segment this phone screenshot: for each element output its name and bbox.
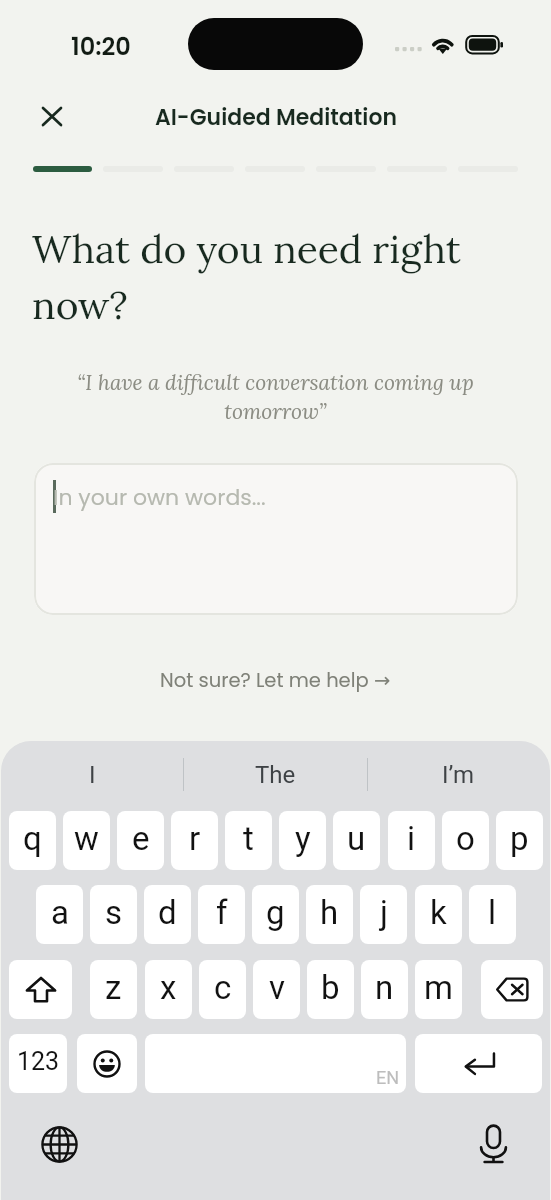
- button[interactable]: j: [360, 885, 407, 944]
- staticText: x: [160, 968, 177, 1007]
- staticText: i: [407, 819, 416, 858]
- staticText: EN: [376, 1067, 400, 1088]
- staticText: I’m: [442, 761, 475, 789]
- button[interactable]: z: [90, 960, 137, 1019]
- staticText: v: [269, 968, 285, 1007]
- button[interactable]: u: [333, 811, 380, 870]
- button[interactable]: 123: [9, 1034, 67, 1093]
- button[interactable]: w: [63, 811, 110, 870]
- staticText: s: [105, 893, 123, 932]
- button[interactable]: I’m: [367, 758, 550, 791]
- button[interactable]: i: [388, 811, 435, 870]
- button[interactable]: h: [306, 885, 353, 944]
- button[interactable]: y: [279, 811, 326, 870]
- staticText: b: [321, 968, 340, 1007]
- button[interactable]: s: [90, 885, 137, 944]
- staticText: f: [216, 893, 228, 932]
- staticText: y: [295, 819, 311, 858]
- button[interactable]: Backspace: [481, 960, 543, 1019]
- button[interactable]: r: [171, 811, 218, 870]
- staticText: The: [255, 761, 296, 789]
- button[interactable]: b: [307, 960, 354, 1019]
- button[interactable]: I: [1, 758, 184, 791]
- staticText: k: [430, 893, 447, 932]
- button[interactable]: f: [198, 885, 245, 944]
- button[interactable]: Return: [415, 1034, 542, 1093]
- staticText: u: [347, 819, 366, 858]
- button[interactable]: Not sure? Let me help →: [0, 663, 551, 697]
- button[interactable]: p: [496, 811, 543, 870]
- staticText: m: [424, 968, 453, 1007]
- staticText: j: [380, 893, 388, 932]
- staticText: 10:20: [71, 30, 131, 64]
- button[interactable]: n: [361, 960, 408, 1019]
- staticText: 123: [17, 1047, 60, 1076]
- staticText: p: [510, 819, 529, 858]
- button[interactable]: o: [442, 811, 489, 870]
- staticText: r: [189, 819, 201, 858]
- button[interactable]: v: [253, 960, 300, 1019]
- button[interactable]: k: [415, 885, 462, 944]
- staticText: z: [105, 968, 122, 1007]
- staticText: q: [23, 819, 42, 858]
- staticText: w: [74, 819, 99, 858]
- button[interactable]: Shift: [9, 960, 72, 1019]
- button[interactable]: Space: [145, 1034, 406, 1093]
- staticText: a: [51, 893, 69, 932]
- button[interactable]: Dictate: [471, 1121, 516, 1166]
- staticText: What do you need right now?: [32, 224, 512, 330]
- staticText: h: [320, 893, 339, 932]
- button[interactable]: c: [199, 960, 246, 1019]
- button[interactable]: e: [117, 811, 164, 870]
- button[interactable]: l: [469, 885, 516, 944]
- button[interactable]: g: [252, 885, 299, 944]
- staticText: “I have a difficult conversation coming …: [36, 369, 515, 425]
- staticText: l: [488, 893, 497, 932]
- button[interactable]: m: [415, 960, 462, 1019]
- staticText: Not sure? Let me help →: [160, 667, 391, 694]
- staticText: g: [266, 893, 285, 932]
- staticText: t: [243, 819, 254, 858]
- staticText: AI-Guided Meditation: [155, 102, 397, 133]
- button[interactable]: In your own words...: [34, 463, 518, 615]
- button[interactable]: x: [145, 960, 192, 1019]
- staticText: n: [375, 968, 394, 1007]
- staticText: In your own words...: [53, 482, 266, 513]
- button[interactable]: Emoji: [77, 1034, 137, 1093]
- button[interactable]: q: [9, 811, 56, 870]
- button[interactable]: The: [184, 758, 367, 791]
- staticText: d: [158, 893, 177, 932]
- staticText: c: [214, 968, 232, 1007]
- staticText: o: [456, 819, 475, 858]
- button[interactable]: d: [144, 885, 191, 944]
- button[interactable]: Switch keyboard: [37, 1122, 82, 1167]
- staticText: I: [89, 761, 96, 789]
- staticText: e: [132, 819, 150, 858]
- button[interactable]: t: [225, 811, 272, 870]
- button[interactable]: a: [36, 885, 83, 944]
- button[interactable]: Close: [29, 93, 75, 139]
